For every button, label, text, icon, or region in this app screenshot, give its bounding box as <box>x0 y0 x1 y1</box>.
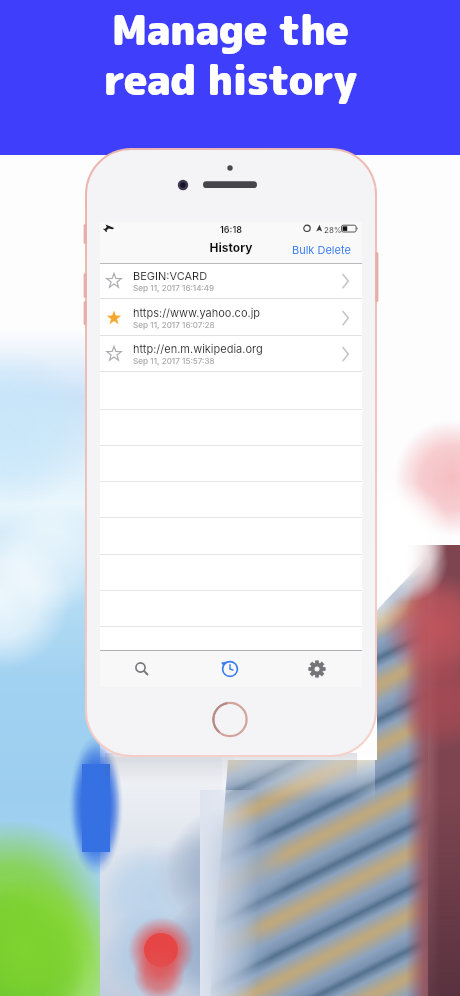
staticText: Sep 11, 2017 15:57:38 <box>133 356 215 366</box>
staticText: Sep 11, 2017 16:14:49 <box>133 283 215 293</box>
button[interactable] <box>123 651 159 687</box>
button[interactable]: BEGIN:VCARD <box>100 263 362 299</box>
button[interactable] <box>299 651 335 687</box>
staticText: read history <box>0 51 460 108</box>
staticText: 28% <box>324 225 342 235</box>
staticText: Manage the <box>0 1 460 58</box>
button[interactable]: http://en.m.wikipedia.org <box>100 336 362 372</box>
staticText: History <box>100 240 362 255</box>
button[interactable]: https://www.yahoo.co.jp <box>100 300 362 336</box>
staticText: 16:18 <box>100 224 362 235</box>
staticText: https://www.yahoo.co.jp <box>133 306 261 319</box>
staticText: http://en.m.wikipedia.org <box>133 342 263 355</box>
button[interactable]: Bulk Delete <box>292 237 358 262</box>
staticText: BEGIN:VCARD <box>133 269 208 282</box>
staticText: Sep 11, 2017 16:07:28 <box>133 320 215 330</box>
button[interactable] <box>212 651 248 687</box>
staticText: Bulk Delete <box>292 243 351 256</box>
